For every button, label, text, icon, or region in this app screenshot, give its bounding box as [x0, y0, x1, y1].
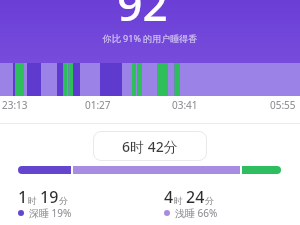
staticText: 6时 42分	[122, 137, 178, 156]
staticText: 时	[28, 195, 37, 206]
staticText: 24	[186, 186, 205, 208]
button[interactable]: 1	[18, 186, 68, 208]
button[interactable]: 4	[164, 186, 214, 208]
staticText: 时	[174, 195, 183, 206]
staticText: 1	[18, 186, 28, 208]
staticText: 01:27	[85, 98, 111, 112]
staticText: 03:41	[172, 98, 198, 112]
staticText: 分	[205, 195, 214, 206]
button[interactable]: 浅睡 66%	[164, 206, 218, 220]
staticText: 4	[164, 186, 174, 208]
staticText: 92	[117, 0, 168, 34]
staticText: 23:13	[2, 98, 28, 112]
staticText: 你比 91% 的用户睡得香	[0, 32, 300, 44]
staticText: 19	[40, 186, 59, 208]
staticText: 深睡 19%	[29, 206, 72, 220]
staticText: 浅睡 66%	[175, 206, 218, 220]
staticText: 分	[59, 195, 68, 206]
button[interactable]: 深睡 19%	[18, 206, 72, 220]
button[interactable]: 6时 42分	[93, 131, 207, 161]
staticText: 05:55	[270, 98, 296, 112]
